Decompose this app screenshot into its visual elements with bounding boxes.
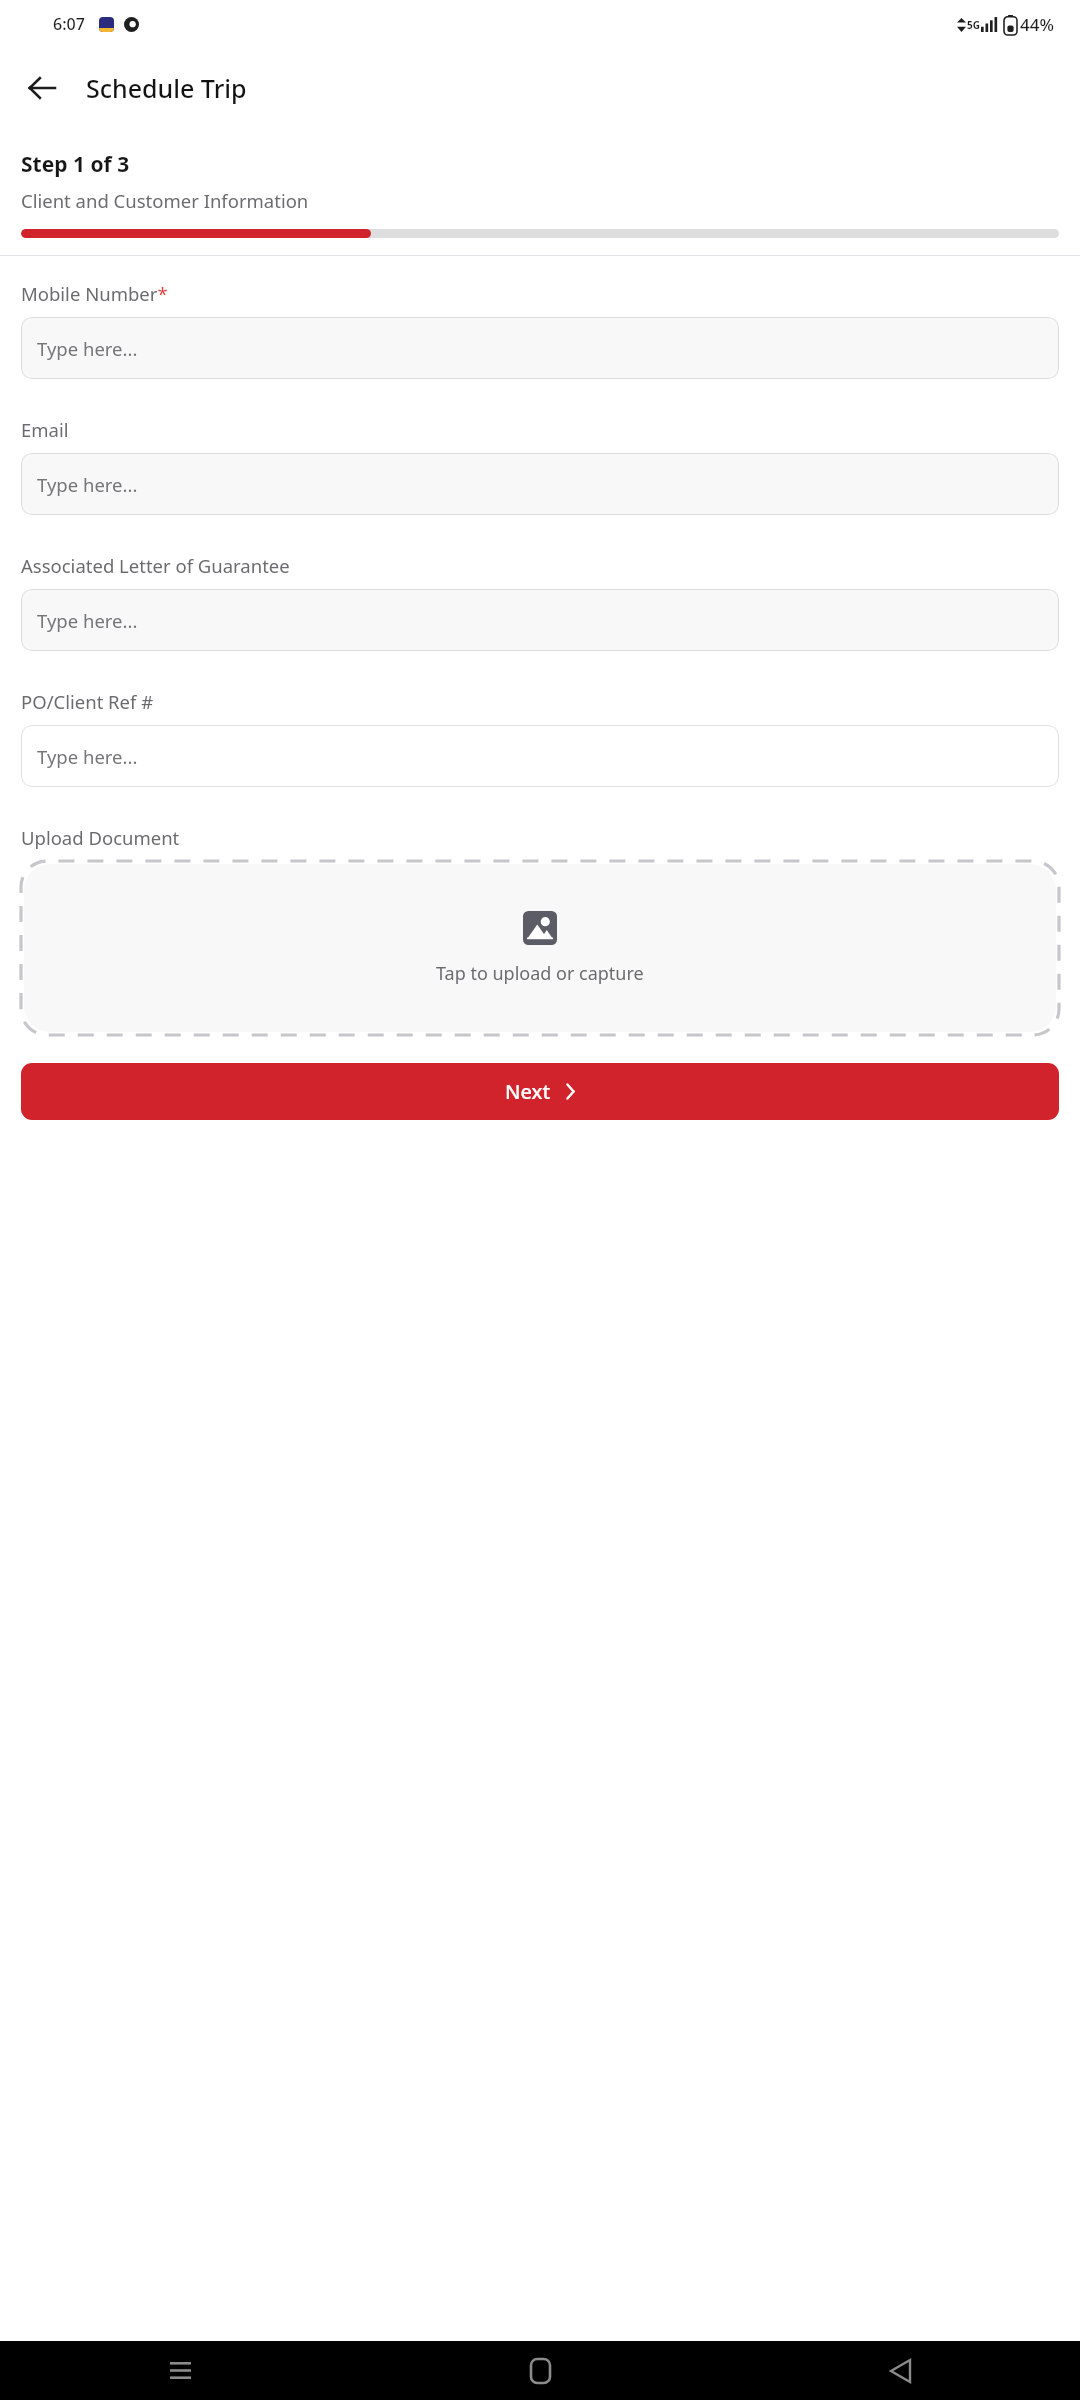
- staticText: Tap to upload or capture: [436, 961, 644, 986]
- staticText: Mobile Number*: [21, 281, 168, 306]
- button[interactable]: Back: [720, 2341, 1080, 2400]
- staticText: 6:07: [53, 13, 85, 35]
- button[interactable]: Recents: [0, 2341, 360, 2400]
- staticText: Type here...: [37, 744, 138, 769]
- staticText: Upload Document: [21, 825, 180, 850]
- button[interactable]: Type here...: [21, 589, 1059, 651]
- staticText: Next: [505, 1078, 551, 1105]
- staticText: Client and Customer Information: [21, 188, 309, 213]
- staticText: Step 1 of 3: [21, 150, 130, 179]
- staticText: 5G: [967, 18, 980, 32]
- button[interactable]: Type here...: [21, 453, 1059, 515]
- staticText: PO/Client Ref #: [21, 689, 154, 714]
- staticText: 44%: [1020, 13, 1054, 36]
- button[interactable]: Type here...: [21, 725, 1059, 787]
- staticText: Type here...: [37, 336, 138, 361]
- staticText: Type here...: [37, 472, 138, 497]
- staticText: Schedule Trip: [86, 71, 247, 105]
- button[interactable]: Type here...: [21, 317, 1059, 379]
- button[interactable]: Next: [21, 1063, 1059, 1120]
- staticText: Associated Letter of Guarantee: [21, 553, 290, 578]
- staticText: Email: [21, 417, 69, 442]
- button[interactable]: Tap to upload or capture: [21, 861, 1059, 1035]
- button[interactable]: Back: [14, 60, 70, 116]
- button[interactable]: Home: [360, 2341, 720, 2400]
- staticText: Type here...: [37, 608, 138, 633]
